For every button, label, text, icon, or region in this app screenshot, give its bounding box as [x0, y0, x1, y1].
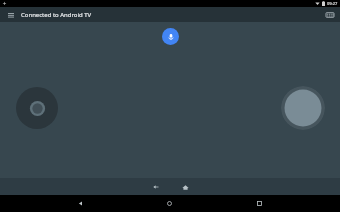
button[interactable]: Home — [177, 179, 193, 195]
button[interactable]: Voice search — [162, 28, 179, 45]
button[interactable]: Menu — [5, 9, 17, 21]
button[interactable]: Touchpad — [281, 86, 325, 130]
button[interactable]: Home — [160, 195, 178, 212]
button[interactable]: Back — [148, 179, 164, 195]
staticText: Connected to Android TV — [21, 11, 92, 19]
button[interactable]: Recent apps — [250, 195, 268, 212]
button[interactable]: D-pad — [16, 87, 58, 129]
staticText: 09:27 — [327, 1, 338, 6]
button[interactable]: Keyboard — [324, 9, 336, 21]
button[interactable]: Back — [71, 195, 89, 212]
